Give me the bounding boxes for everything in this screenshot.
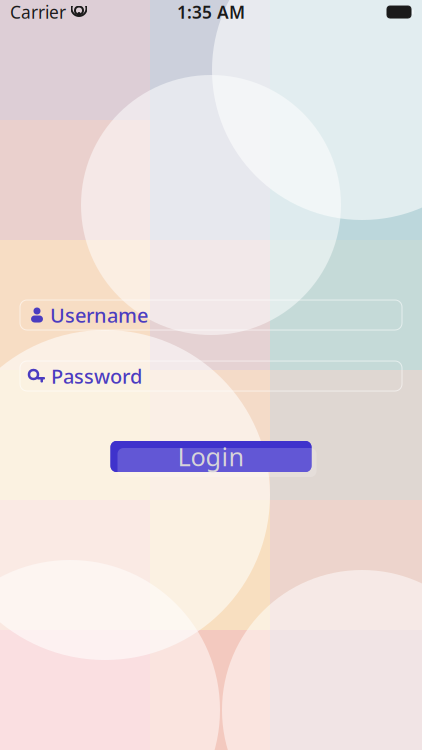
- staticText: Login: [177, 440, 244, 473]
- staticText: 1:35 AM: [177, 0, 245, 23]
- button[interactable]: Password: [20, 361, 402, 391]
- staticText: Password: [51, 363, 142, 389]
- staticText: Carrier: [10, 0, 66, 23]
- button[interactable]: Login: [110, 441, 311, 472]
- button[interactable]: Username: [20, 300, 402, 330]
- staticText: Username: [50, 302, 148, 328]
